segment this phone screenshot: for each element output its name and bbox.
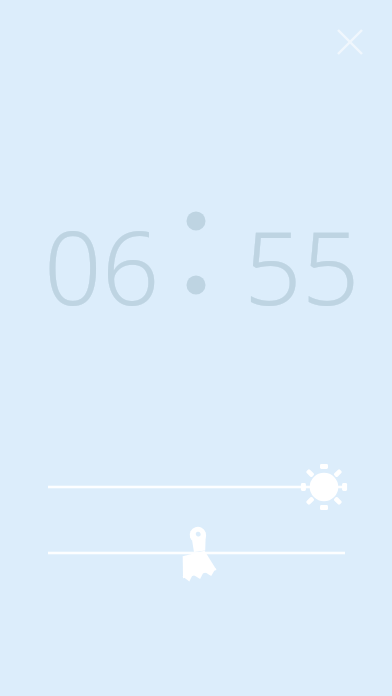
button[interactable]: Brightness (40, 458, 360, 518)
staticText: 06 (44, 197, 160, 335)
button[interactable]: Close (326, 18, 374, 66)
button[interactable]: Tint (40, 525, 360, 585)
staticText: 55 (244, 197, 360, 335)
